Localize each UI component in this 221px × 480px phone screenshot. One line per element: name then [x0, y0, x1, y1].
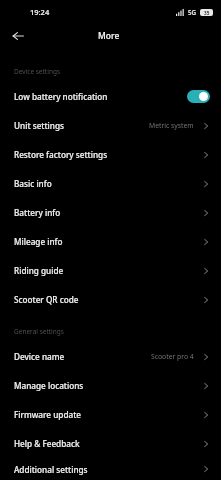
button[interactable]: Firmware update [0, 400, 221, 429]
staticText: Low battery notification [14, 91, 108, 102]
button[interactable]: Battery info [0, 198, 221, 227]
staticText: Metric system [149, 121, 194, 130]
button[interactable]: Unit settings [0, 111, 221, 140]
staticText: General settings [14, 327, 64, 336]
staticText: Scooter QR code [14, 294, 79, 305]
button[interactable]: Restore factory settings [0, 140, 221, 169]
staticText: Device name [14, 351, 65, 362]
button[interactable]: Scooter QR code [0, 285, 221, 314]
button[interactable]: Riding guide [0, 256, 221, 285]
button[interactable]: Device name [0, 342, 221, 371]
button[interactable]: Help & Feedback [0, 429, 221, 458]
staticText: Manage locations [14, 380, 84, 391]
button[interactable]: Manage locations [0, 371, 221, 400]
staticText: Scooter pro 4 [151, 352, 194, 361]
staticText: Basic info [14, 178, 52, 189]
button[interactable]: Back [7, 25, 29, 47]
staticText: Unit settings [14, 120, 65, 131]
staticText: 19:24 [30, 7, 50, 17]
staticText: Riding guide [14, 265, 64, 276]
button[interactable]: Mileage info [0, 227, 221, 256]
staticText: 35 [204, 10, 210, 16]
staticText: Battery info [14, 207, 61, 218]
button[interactable]: Low battery notification [0, 82, 221, 111]
button[interactable]: Additional settings [0, 458, 221, 480]
staticText: Firmware update [14, 409, 81, 420]
staticText: Restore factory settings [14, 149, 108, 160]
staticText: More [98, 30, 120, 42]
staticText: Additional settings [14, 464, 88, 475]
staticText: Device settings [14, 67, 61, 76]
staticText: Help & Feedback [14, 438, 80, 449]
staticText: Mileage info [14, 236, 63, 247]
staticText: 5G [188, 8, 197, 16]
button[interactable]: Basic info [0, 169, 221, 198]
